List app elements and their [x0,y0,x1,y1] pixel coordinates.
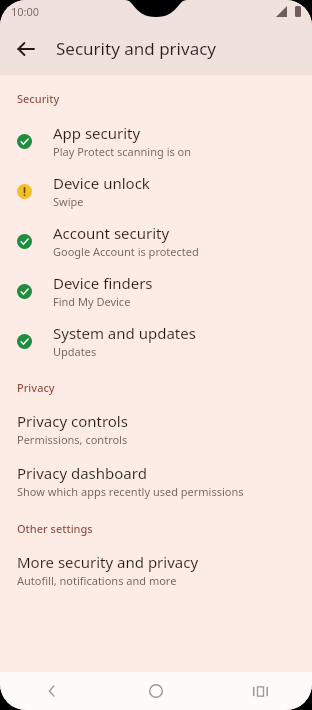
staticText: System and updates [53,323,196,343]
staticText: Permissions, controls [17,432,128,447]
button[interactable]: System and updates [0,316,312,366]
staticText: Account security [53,223,170,243]
button[interactable]: App security [0,116,312,166]
staticText: Security [17,91,60,106]
staticText: Device unlock [53,173,150,193]
button[interactable]: Back [6,29,46,69]
button[interactable]: Device finders [0,266,312,316]
staticText: Updates [53,344,97,359]
button[interactable]: Privacy dashboard [0,455,312,507]
staticText: Swipe [53,194,84,209]
staticText: 10:00 [11,4,40,19]
staticText: Autofill, notifications and more [17,573,177,588]
button[interactable]: Privacy controls [0,403,312,455]
staticText: Google Account is protected [53,244,199,259]
button[interactable]: More security and privacy [0,544,312,596]
button[interactable]: Back [0,672,104,710]
staticText: Device finders [53,273,153,293]
staticText: Find My Device [53,294,131,309]
button[interactable]: Recents [208,672,312,710]
staticText: Security and privacy [56,37,217,60]
button[interactable]: Account security [0,216,312,266]
button[interactable]: Home [104,672,208,710]
staticText: Other settings [17,521,93,536]
staticText: Privacy controls [17,411,128,431]
staticText: Play Protect scanning is on [53,144,192,159]
staticText: More security and privacy [17,552,199,572]
button[interactable]: Device unlock [0,166,312,216]
staticText: App security [53,123,141,143]
staticText: Privacy dashboard [17,463,147,483]
staticText: Privacy [17,380,55,395]
staticText: Show which apps recently used permission… [17,484,244,499]
